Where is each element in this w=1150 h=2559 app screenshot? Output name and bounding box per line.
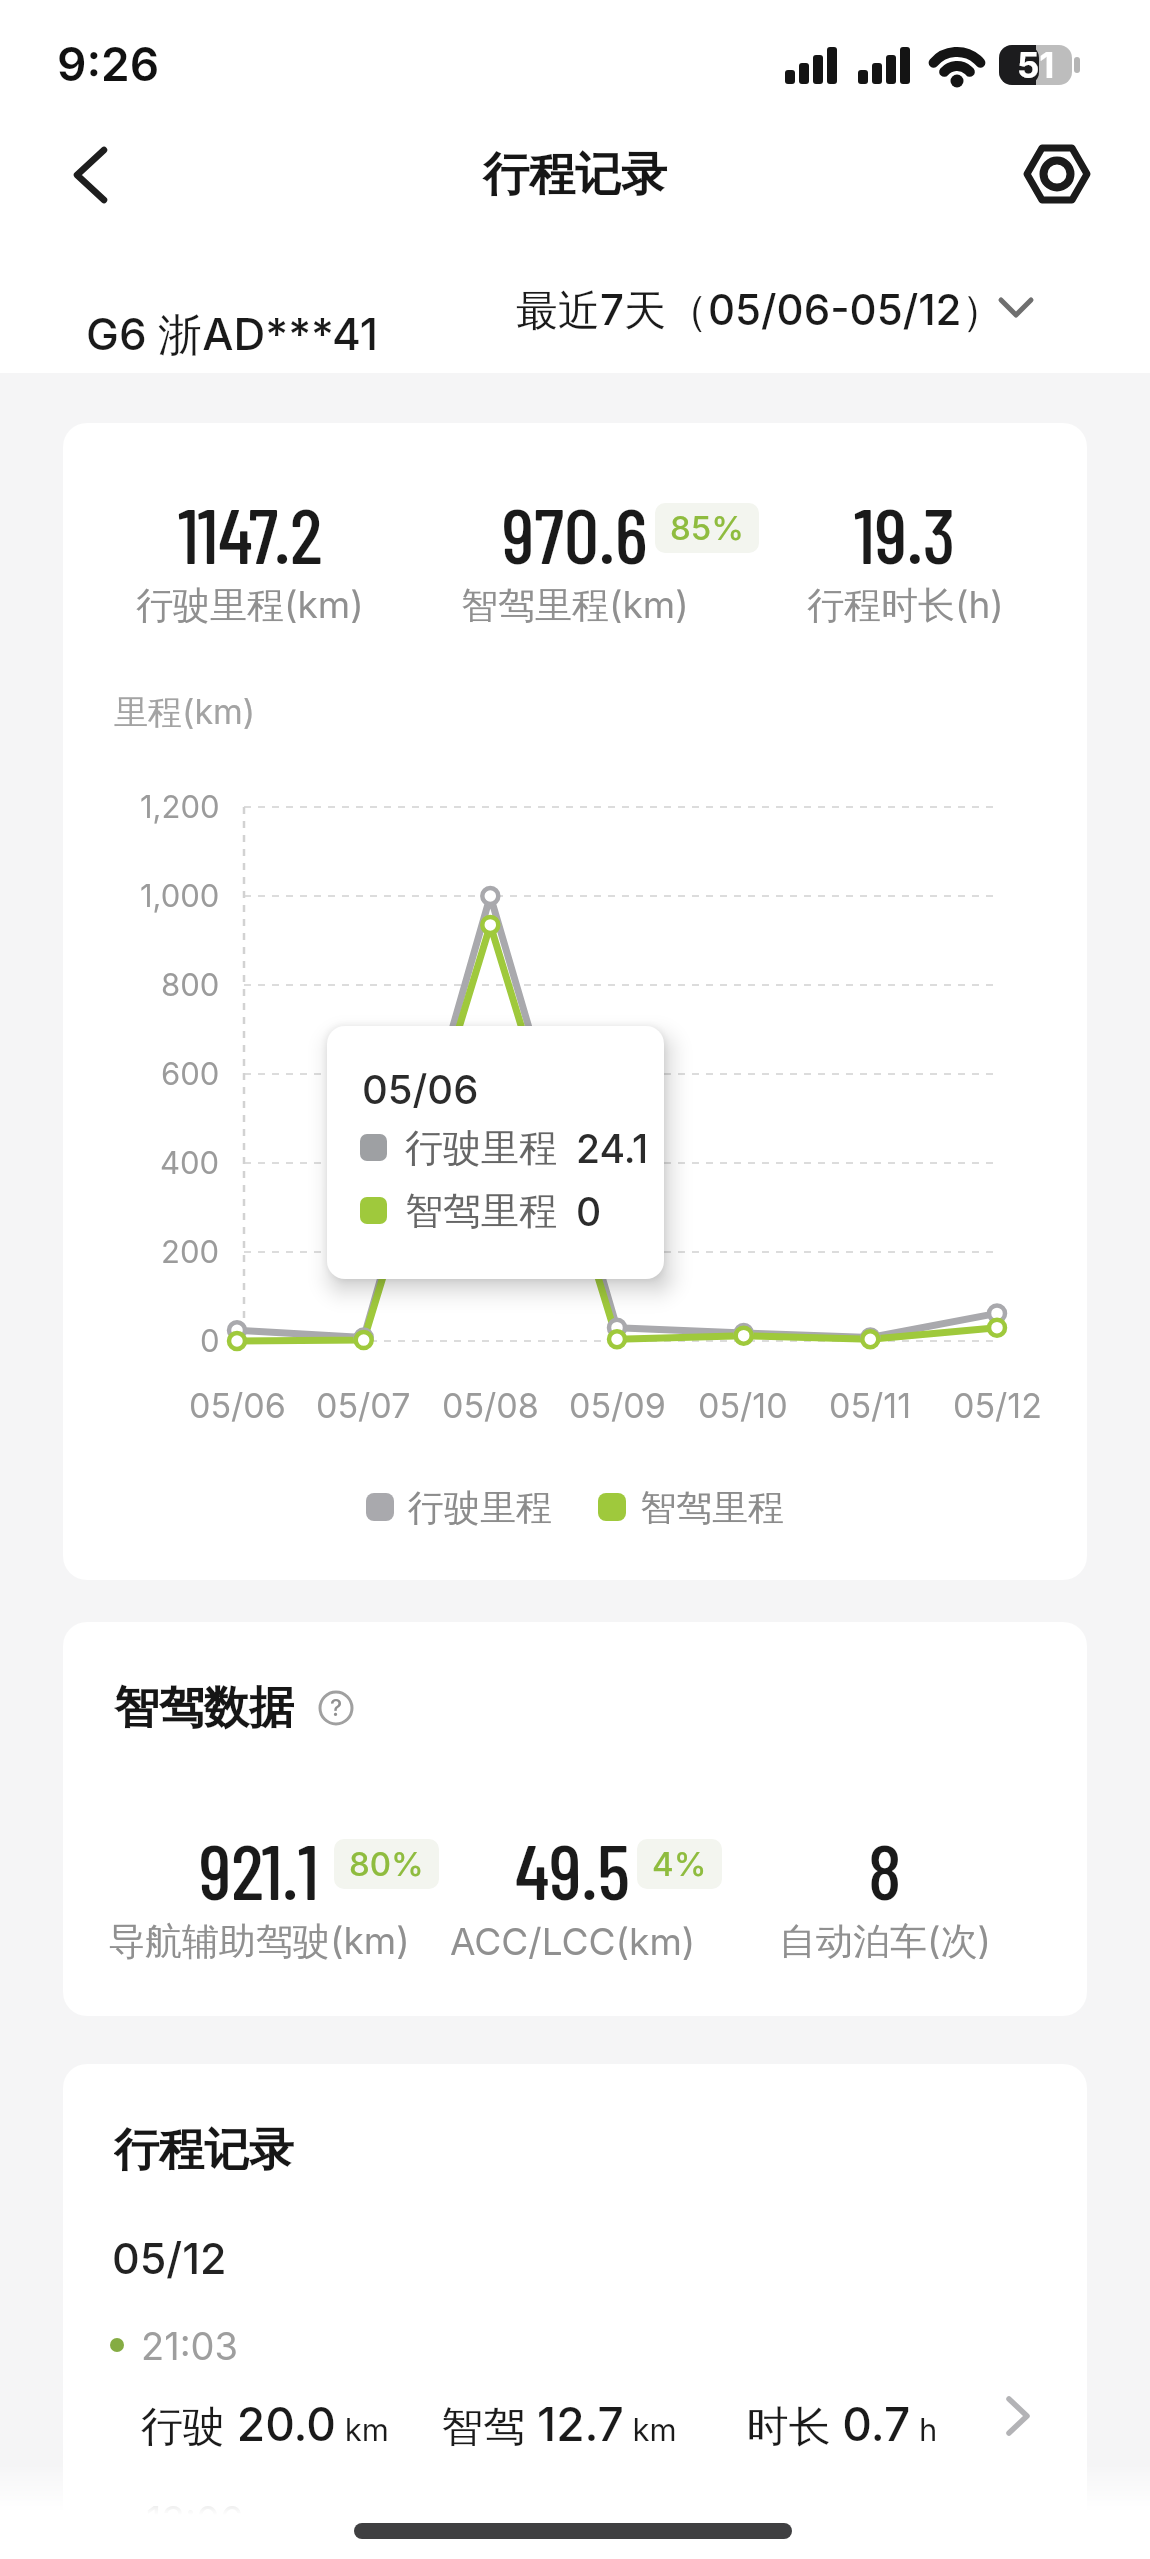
staticText: 970.6: [502, 486, 648, 566]
button[interactable]: [480, 255, 1080, 365]
staticText: 05/07: [316, 1385, 411, 1426]
staticText: 9:26: [57, 36, 160, 92]
staticText: 行驶里程: [405, 1124, 557, 1172]
staticText: 最近7天（05/06-05/12）: [516, 284, 1004, 337]
button[interactable]: G6 浙AD***41: [60, 255, 352, 365]
staticText: 24.1: [576, 1125, 649, 1172]
staticText: 行驶里程: [408, 1485, 552, 1529]
staticText: 05/11: [829, 1385, 912, 1426]
staticText: 自动泊车(次): [779, 1918, 991, 1965]
staticText: 行程记录: [114, 2122, 294, 2178]
staticText: 1,000: [140, 877, 220, 915]
staticText: ACC/LCC(km): [450, 1919, 696, 1964]
staticText: 1,200: [140, 788, 220, 826]
staticText: 51: [1017, 44, 1055, 86]
staticText: 1147.2: [178, 486, 323, 566]
staticText: 800: [161, 966, 220, 1004]
staticText: 05/10: [698, 1385, 788, 1426]
staticText: 05/06: [189, 1385, 286, 1426]
staticText: 05/12: [953, 1385, 1042, 1426]
staticText: 智驾里程: [405, 1187, 557, 1235]
staticText: 行驶 20.0 km 智驾 12.7 km 时长 0.7 h: [141, 2396, 938, 2453]
staticText: 行程时长(h): [807, 582, 1004, 629]
staticText: 921.1: [199, 1822, 319, 1902]
staticText: 0: [576, 1188, 602, 1235]
staticText: 智驾数据: [114, 1680, 294, 1736]
staticText: G6 浙AD***41: [86, 307, 378, 363]
staticText: 4%: [652, 1844, 707, 1884]
staticText: 行驶里程(km): [136, 582, 364, 629]
button[interactable]: [1016, 133, 1098, 215]
staticText: 200: [161, 1233, 220, 1271]
staticText: 0: [200, 1322, 220, 1360]
staticText: 导航辅助驾驶(km): [108, 1918, 410, 1965]
staticText: 05/12: [112, 2232, 227, 2284]
staticText: 400: [160, 1144, 220, 1182]
staticText: 行程记录: [483, 146, 667, 204]
staticText: 600: [161, 1055, 220, 1093]
button[interactable]: 行驶 20.0 km 智驾 12.7 km 时长 0.7 h: [63, 2384, 1087, 2464]
staticText: 智驾里程: [640, 1485, 784, 1529]
staticText: 80%: [349, 1844, 424, 1884]
staticText: 21:03: [141, 2323, 239, 2369]
staticText: 05/08: [442, 1385, 539, 1426]
staticText: 19.3: [854, 486, 956, 566]
staticText: 智驾里程(km): [461, 582, 689, 629]
staticText: 05/09: [569, 1385, 666, 1426]
staticText: 里程(km): [114, 691, 256, 734]
staticText: 8: [868, 1822, 902, 1902]
staticText: ?: [330, 1694, 343, 1722]
staticText: 05/06: [362, 1065, 479, 1113]
button[interactable]: [50, 135, 130, 215]
staticText: 49.5: [515, 1822, 631, 1902]
staticText: 85%: [670, 508, 744, 548]
